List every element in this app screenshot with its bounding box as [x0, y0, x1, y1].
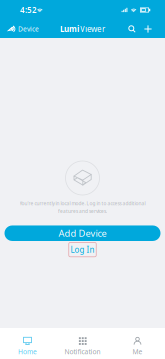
staticText: Home: [18, 347, 37, 356]
staticText: Add Device: [58, 227, 106, 239]
button[interactable]: Log In: [69, 242, 96, 257]
button[interactable]: Device: [0, 20, 43, 38]
staticText: Lumi: [60, 24, 79, 34]
staticText: Device: [18, 25, 39, 33]
staticText: Viewer: [80, 24, 105, 34]
button[interactable]: Add Device: [4, 225, 160, 241]
button[interactable]: Me: [110, 328, 165, 359]
button[interactable]: Home: [0, 328, 55, 359]
button[interactable]: Add device: [140, 20, 156, 38]
staticText: 4:52: [20, 5, 37, 15]
staticText: Log In: [70, 244, 94, 255]
staticText: Notification: [64, 347, 100, 356]
staticText: You're currently in local mode. Log in t…: [19, 200, 145, 206]
staticText: Me: [132, 347, 142, 356]
button[interactable]: Search: [124, 20, 140, 38]
button[interactable]: Notification: [55, 328, 110, 359]
staticText: features and services.: [58, 208, 107, 214]
